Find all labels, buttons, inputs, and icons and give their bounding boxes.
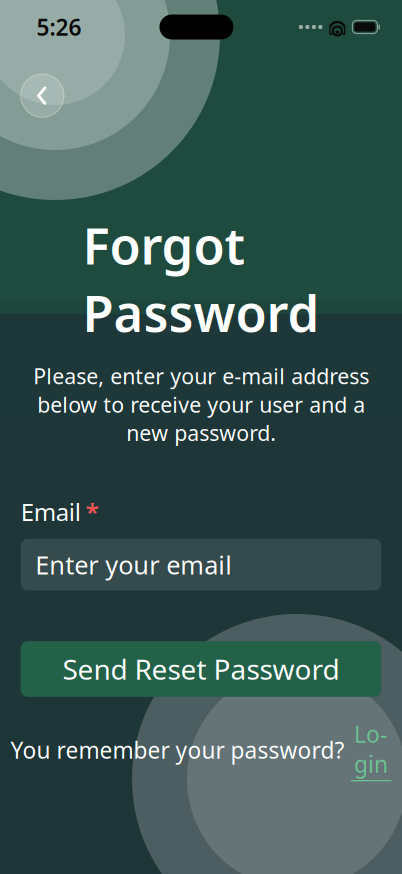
staticText: * (86, 496, 99, 528)
staticText: Send Reset Password (62, 650, 339, 688)
button[interactable]: Login (350, 719, 391, 781)
button[interactable]: Send Reset Password (21, 641, 381, 697)
staticText: Enter your email (35, 548, 232, 581)
staticText: Please, enter your e-mail address below … (33, 362, 369, 447)
staticText: Forgot Password (82, 211, 319, 346)
staticText: Email (21, 496, 81, 528)
staticText: Login (354, 719, 388, 779)
button[interactable]: Enter your email (21, 539, 381, 590)
staticText: 5:26 (36, 12, 81, 42)
staticText: You remember your password? (10, 735, 350, 765)
button[interactable]: Back (21, 74, 64, 117)
